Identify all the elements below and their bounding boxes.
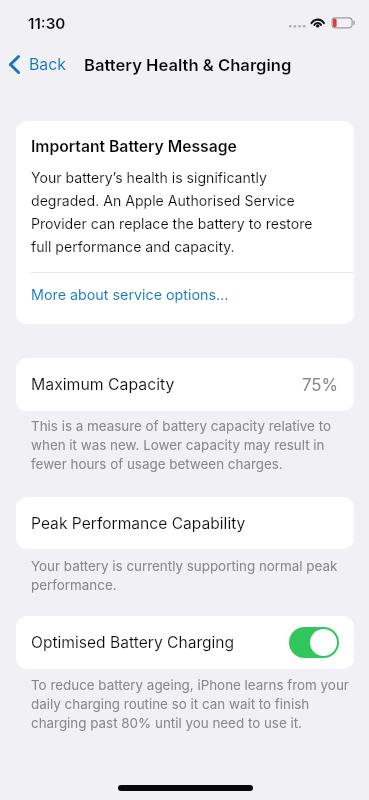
staticText: Optimised Battery Charging	[31, 633, 235, 652]
staticText: Your battery is currently supporting nor…	[31, 556, 356, 594]
staticText: More about service options...	[31, 286, 229, 303]
staticText: This is a measure of battery capacity re…	[31, 416, 356, 473]
staticText: To reduce battery ageing, iPhone learns …	[31, 675, 356, 732]
staticText: 75%	[302, 375, 339, 395]
staticText: Maximum Capacity	[31, 375, 175, 394]
staticText: Your battery’s health is significantly d…	[31, 164, 327, 256]
staticText: Important Battery Message	[31, 137, 237, 156]
button[interactable]: Optimised Battery Charging	[16, 616, 354, 669]
staticText: 11:30	[28, 14, 66, 32]
staticText: Peak Performance Capability	[31, 514, 246, 533]
button[interactable]: More about service options...	[16, 273, 354, 324]
button[interactable]: Optimised Battery Charging	[289, 627, 339, 658]
button[interactable]: Back	[0, 51, 74, 78]
staticText: Back	[29, 55, 66, 74]
other: Back	[9, 55, 20, 74]
staticText: Battery Health & Charging	[84, 55, 292, 75]
button[interactable]: Peak Performance Capability	[16, 497, 354, 549]
button[interactable]: Maximum Capacity	[16, 358, 354, 411]
